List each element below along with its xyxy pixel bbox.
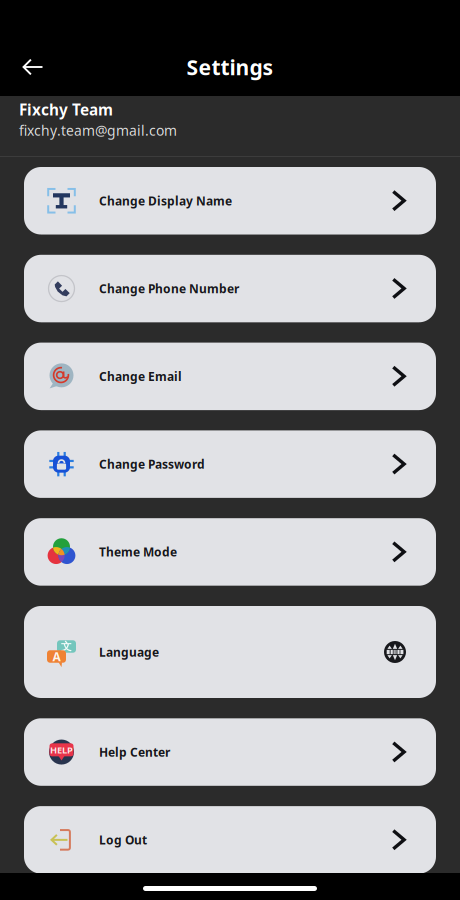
staticText: HELP bbox=[50, 744, 73, 756]
staticText: Language bbox=[99, 644, 159, 660]
button[interactable]: Change Password bbox=[24, 430, 436, 498]
staticText: Change Display Name bbox=[99, 193, 232, 209]
staticText: Settings bbox=[186, 53, 273, 81]
button[interactable]: Change Phone Number bbox=[24, 255, 436, 322]
staticText: Change Email bbox=[99, 368, 182, 384]
button[interactable]: Back bbox=[11, 45, 55, 89]
button[interactable]: Change Display Name bbox=[24, 167, 436, 234]
staticText: Help Center bbox=[99, 744, 170, 760]
button[interactable]: Log Out bbox=[24, 806, 436, 874]
staticText: Fixchy Team bbox=[19, 99, 113, 120]
staticText: Log Out bbox=[99, 832, 147, 848]
button[interactable]: HELP bbox=[24, 718, 436, 786]
button[interactable]: 文 bbox=[24, 606, 436, 698]
button[interactable]: Theme Mode bbox=[24, 518, 436, 586]
staticText: A bbox=[52, 648, 60, 664]
button[interactable]: Change Email bbox=[24, 343, 436, 410]
staticText: Theme Mode bbox=[99, 544, 177, 560]
staticText: Change Password bbox=[99, 456, 205, 472]
staticText: Change Phone Number bbox=[99, 281, 239, 296]
staticText: 文 bbox=[61, 640, 72, 653]
staticText: fixchy.team@gmail.com bbox=[19, 121, 177, 140]
